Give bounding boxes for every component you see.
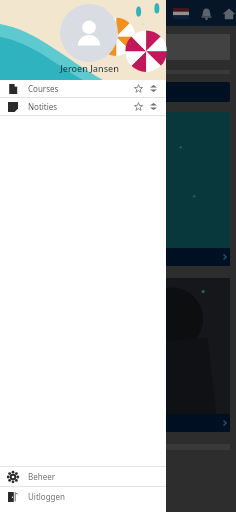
button[interactable]	[6, 82, 230, 102]
button[interactable]: Reorder	[148, 101, 159, 112]
button[interactable]	[6, 278, 230, 432]
staticText: Uitloggen	[28, 491, 65, 502]
staticText: Beheer	[28, 471, 55, 482]
button[interactable]: Notifications	[196, 3, 216, 23]
button[interactable]: How	[6, 112, 230, 266]
button[interactable]: Beheer	[0, 467, 166, 486]
button[interactable]: Jeroen Jansen	[0, 0, 166, 80]
button[interactable]: Reorder	[148, 83, 159, 94]
staticText: Notities	[28, 101, 58, 112]
button[interactable]: Language	[172, 5, 190, 21]
staticText: Courses	[28, 83, 59, 94]
button[interactable]: Notities	[0, 98, 166, 115]
staticText: Jeroen Jansen	[60, 62, 119, 74]
button[interactable]: Uitloggen	[0, 487, 166, 506]
button[interactable]: Favorite	[132, 82, 145, 95]
button[interactable]: Home	[222, 3, 236, 23]
button[interactable]: Courses	[0, 80, 166, 97]
button[interactable]: Favorite	[132, 100, 145, 113]
